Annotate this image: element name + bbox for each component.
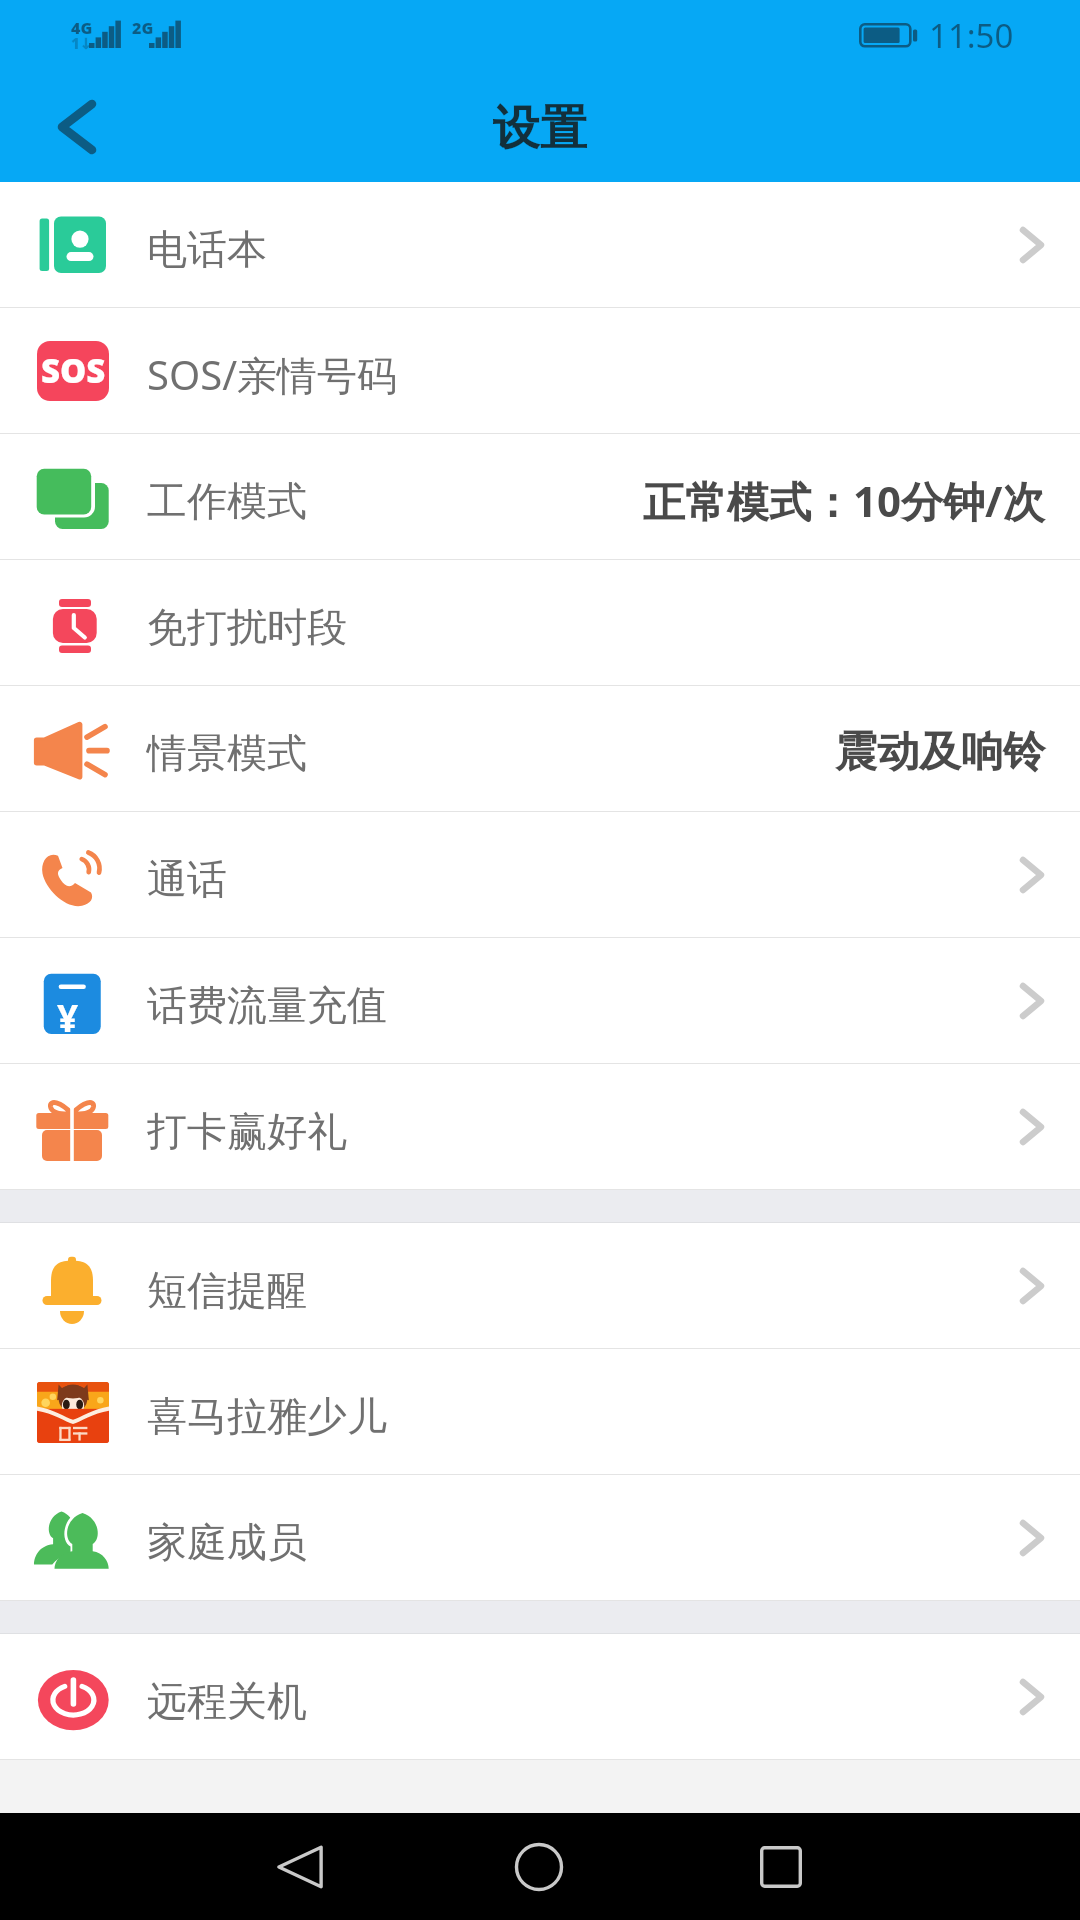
button[interactable]: 免打扰时段 [0, 560, 1080, 685]
staticText: 震动及响铃 [835, 726, 1045, 779]
staticText: 2G [132, 17, 154, 39]
button[interactable]: ¥ [0, 938, 1080, 1063]
button[interactable]: 远程关机 [0, 1634, 1080, 1759]
button[interactable]: 电话本 [0, 182, 1080, 307]
staticText: 情景模式 [147, 728, 307, 778]
staticText: 话费流量充值 [147, 980, 387, 1030]
button[interactable]: 通话 [0, 812, 1080, 937]
button[interactable]: SOS [0, 308, 1080, 433]
button[interactable]: Back [0, 68, 140, 182]
staticText: SOS/亲情号码 [147, 347, 398, 402]
staticText: 打卡赢好礼 [147, 1106, 347, 1156]
button[interactable]: 家庭成员 [0, 1475, 1080, 1600]
button[interactable]: 短信提醒 [0, 1223, 1080, 1348]
button[interactable]: Back [240, 1813, 360, 1920]
staticText: 正常模式：10分钟/次 [643, 472, 1045, 529]
staticText: 短信提醒 [147, 1265, 307, 1315]
staticText: 11:50 [929, 13, 1014, 58]
button[interactable]: 喜马拉雅少儿 [0, 1349, 1080, 1474]
staticText: ¥ [57, 992, 79, 1042]
staticText: 通话 [147, 854, 227, 904]
staticText: SOS [41, 348, 106, 393]
staticText: 4G [71, 17, 93, 39]
button[interactable]: 打卡赢好礼 [0, 1064, 1080, 1189]
staticText: 工作模式 [147, 476, 307, 526]
staticText: 喜马拉雅少儿 [147, 1391, 387, 1441]
staticText: 免打扰时段 [147, 602, 347, 652]
staticText: 远程关机 [147, 1676, 307, 1726]
button[interactable]: 工作模式 [0, 434, 1080, 559]
staticText: 1↓ [71, 33, 93, 53]
button[interactable]: Recents [721, 1813, 841, 1920]
button[interactable]: 情景模式 [0, 686, 1080, 811]
staticText: 电话本 [147, 224, 267, 274]
staticText: 家庭成员 [147, 1517, 307, 1567]
button[interactable]: Home [479, 1813, 599, 1920]
staticText: 设置 [493, 99, 587, 158]
